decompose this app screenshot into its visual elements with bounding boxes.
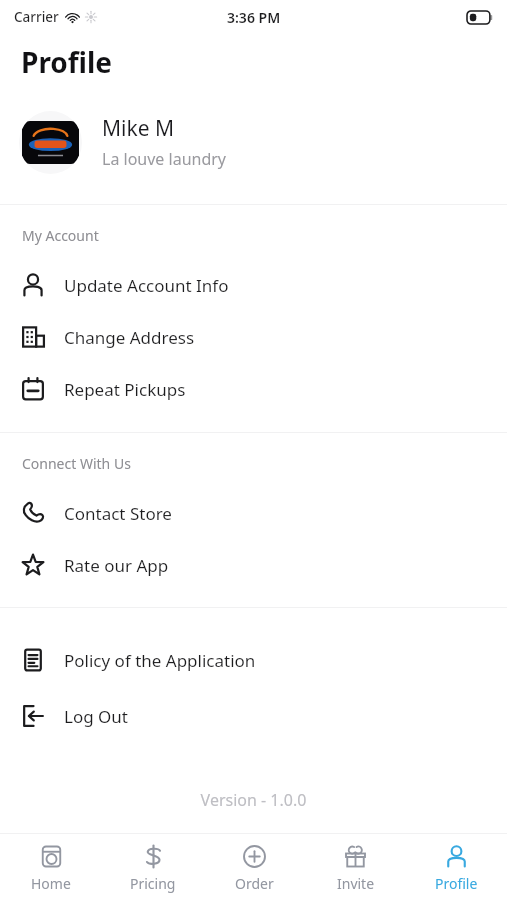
staticText: Carrier [14,8,59,26]
staticText: Pricing [130,874,176,893]
staticText: Connect With Us [22,454,131,473]
button[interactable]: Contact Store [0,487,507,539]
staticText: 3:36 PM [227,8,281,27]
staticText: Rate our App [64,554,169,577]
staticText: Log Out [64,705,128,728]
staticText: Version - 1.0.0 [0,789,507,811]
button[interactable]: Rate our App [0,539,507,591]
staticText: Profile [435,874,478,893]
staticText: Order [235,874,274,893]
button[interactable]: Mike M [0,104,507,180]
button[interactable]: Invite [305,836,406,899]
staticText: Invite [337,874,375,893]
staticText: Update Account Info [64,274,229,297]
button[interactable]: Pricing [102,836,204,899]
staticText: Repeat Pickups [64,378,186,401]
staticText: My Account [22,226,99,245]
staticText: Policy of the Application [64,649,256,672]
staticText: Home [31,874,71,893]
button[interactable]: Order [204,836,305,899]
button[interactable]: Profile [406,836,507,899]
staticText: Mike M [102,114,175,143]
button[interactable]: Log Out [0,688,507,744]
staticText: Change Address [64,326,195,349]
staticText: La louve laundry [102,148,227,170]
button[interactable]: Repeat Pickups [0,363,507,415]
staticText: Profile [21,43,113,81]
button[interactable]: Home [0,836,102,899]
staticText: Contact Store [64,502,172,525]
button[interactable]: Policy of the Application [0,632,507,688]
button[interactable]: Update Account Info [0,259,507,311]
button[interactable]: Change Address [0,311,507,363]
